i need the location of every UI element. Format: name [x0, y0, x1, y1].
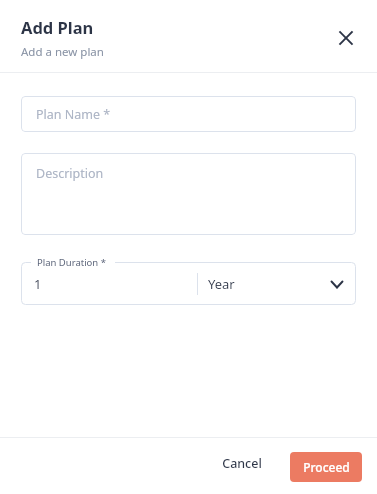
staticText: 1 [34, 275, 42, 293]
button[interactable]: Select duration unit [326, 273, 348, 295]
staticText: Plan Name * [36, 106, 111, 123]
button[interactable]: Close [332, 24, 360, 52]
button[interactable]: Cancel [213, 448, 271, 478]
staticText: Add a new plan [21, 44, 104, 60]
staticText: Cancel [222, 455, 262, 472]
staticText: Plan Duration * [37, 256, 106, 269]
button[interactable]: Plan Name * [21, 96, 356, 132]
button[interactable]: Description [21, 153, 356, 235]
button[interactable]: Proceed [290, 452, 362, 482]
staticText: Proceed [303, 459, 350, 475]
button[interactable]: Plan Duration * [21, 262, 356, 305]
staticText: Add Plan [21, 16, 94, 38]
staticText: Year [208, 275, 235, 293]
staticText: Description [36, 165, 104, 182]
